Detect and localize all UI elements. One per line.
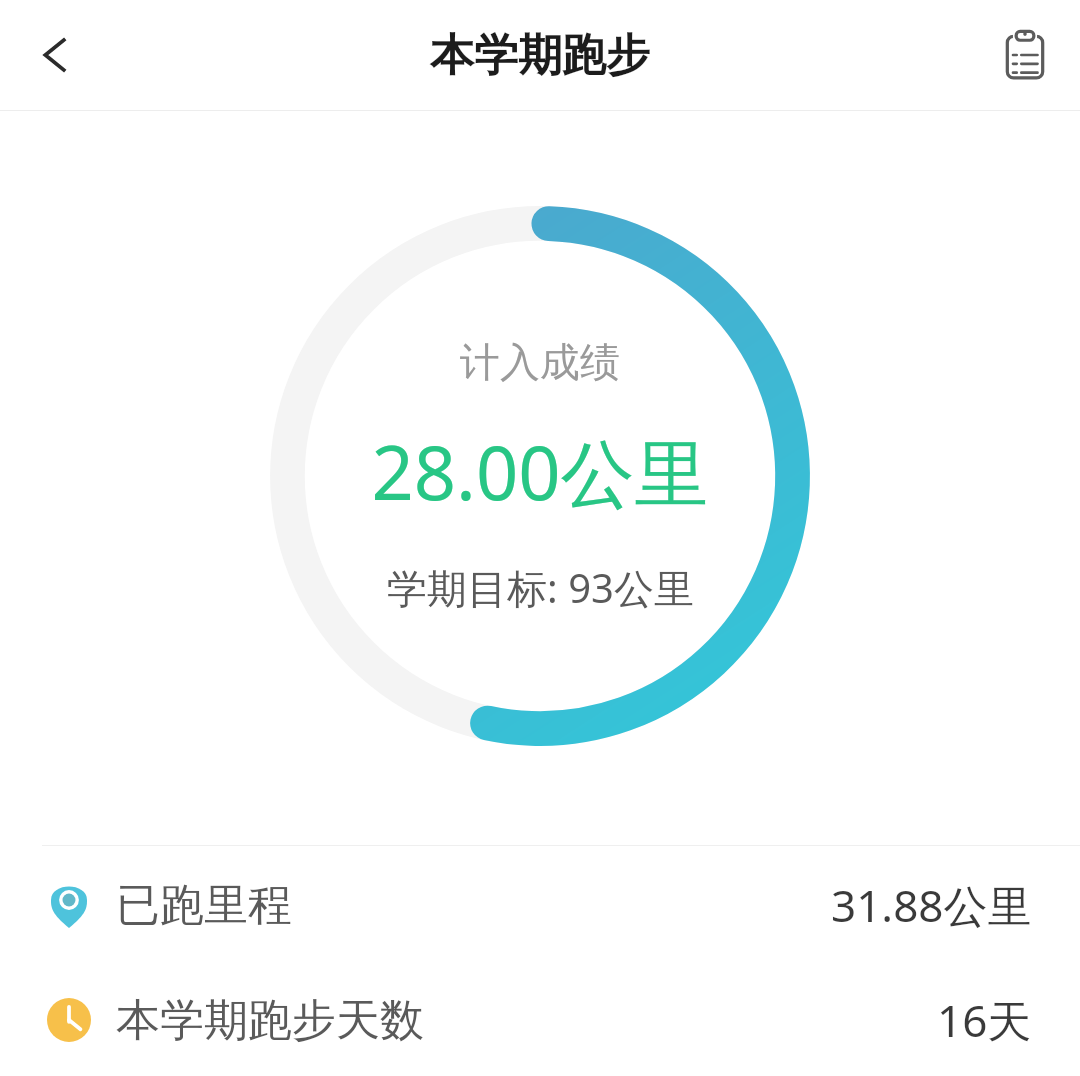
staticText: 本学期跑步天数 — [116, 993, 424, 1048]
staticText: 已跑里程 — [116, 878, 292, 933]
button[interactable]: Records — [970, 0, 1080, 110]
button[interactable]: Back — [0, 0, 110, 110]
button[interactable]: 本学期跑步天数 — [0, 964, 1080, 1076]
staticText: 16天 — [937, 990, 1032, 1050]
staticText: 31.88公里 — [831, 875, 1032, 935]
staticText: 28.00公里 — [371, 421, 709, 522]
staticText: 学期目标: 93公里 — [387, 560, 694, 615]
button[interactable]: 已跑里程 — [0, 846, 1080, 964]
staticText: 本学期跑步 — [430, 28, 650, 83]
staticText: 计入成绩 — [460, 337, 620, 387]
